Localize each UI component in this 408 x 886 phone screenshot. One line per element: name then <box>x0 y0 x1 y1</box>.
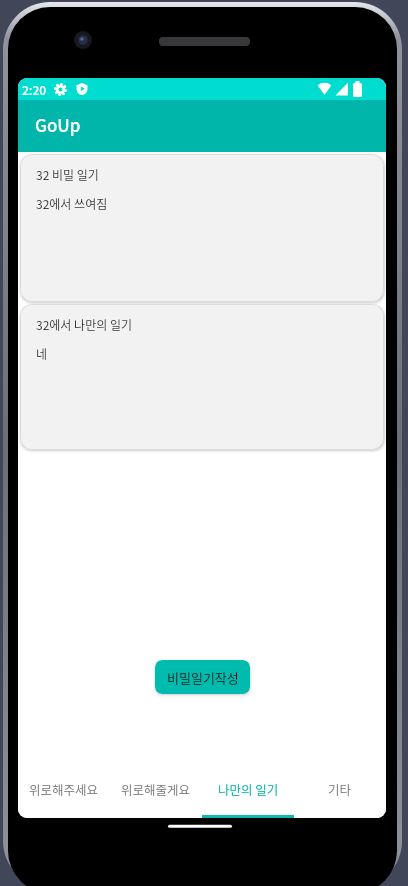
staticText: GoUp <box>35 112 81 137</box>
staticText: 위로해주세요 <box>29 780 99 798</box>
button[interactable]: 32에서 나만의 일기 <box>20 304 384 450</box>
staticText: 32에서 쓰여짐 <box>36 195 108 212</box>
button[interactable]: 위로해주세요 <box>18 762 110 818</box>
staticText: 기타 <box>328 780 352 798</box>
staticText: 32 비밀 일기 <box>36 166 99 183</box>
staticText: 비밀일기작성 <box>167 668 239 687</box>
button[interactable]: 위로해줄게요 <box>110 762 202 818</box>
button[interactable]: 비밀일기작성 <box>155 660 250 694</box>
button[interactable]: 기타 <box>294 762 386 818</box>
staticText: 2:20 <box>22 81 47 98</box>
button[interactable]: 나만의 일기 <box>202 762 294 818</box>
button[interactable]: 32 비밀 일기 <box>20 154 384 302</box>
staticText: 나만의 일기 <box>218 780 279 798</box>
staticText: 네 <box>36 345 48 362</box>
staticText: 32에서 나만의 일기 <box>36 316 132 333</box>
staticText: 위로해줄게요 <box>121 780 191 798</box>
